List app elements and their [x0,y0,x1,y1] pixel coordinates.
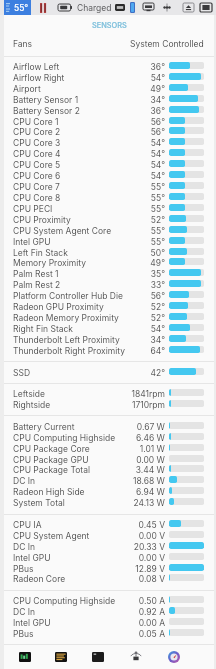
staticText: 55° [14,3,29,13]
staticText: 36° [121,106,165,116]
button[interactable]: Battery Sensor 1 [4,94,214,105]
button[interactable]: CPU Core 2 [4,126,214,137]
button[interactable]: CPU System Agent [4,530,214,541]
button[interactable]: DC In [4,541,214,552]
button[interactable]: Battery [58,4,72,11]
button[interactable]: Right Fin Stack [4,323,214,334]
staticText: 55° [121,226,165,236]
staticText: 34° [121,95,165,105]
staticText: PBus [13,629,34,639]
button[interactable]: Airflow Left [4,61,214,72]
button[interactable]: CPU Package GPU [4,454,214,465]
staticText: CPU Core 1 [13,117,59,127]
button[interactable]: Rightside [4,399,214,410]
button[interactable]: Eject [183,3,194,12]
staticText: Radeon Memory Proximity [13,313,119,323]
button[interactable]: DC In [4,475,214,486]
staticText: 42° [121,368,165,378]
staticText: 54° [121,160,165,170]
button[interactable]: Thunderbolt Right Proximity [4,345,214,356]
button[interactable]: Radeon GPU Proximity [4,301,214,312]
staticText: 0.67 W [121,422,165,432]
button[interactable]: PBus [4,563,214,574]
button[interactable]: Resize [163,3,171,12]
button[interactable]: CPU Core 7 [4,181,214,192]
button[interactable]: Radeon Core [4,573,214,584]
staticText: Intel GPU [13,553,51,563]
button[interactable]: Bluetooth [130,2,135,13]
button[interactable]: SSD [4,367,214,378]
button[interactable]: DC In [4,606,214,617]
button[interactable]: Fans [4,38,214,49]
button[interactable]: Thunderbolt Left Proximity [4,334,214,345]
button[interactable]: CPU Core 6 [4,170,214,181]
button[interactable]: System Total [4,497,214,508]
staticText: DC In [13,542,36,552]
staticText: 0.00 W [121,455,165,465]
button[interactable]: Intel GPU [4,236,214,247]
button[interactable]: Left Fin Stack [4,247,214,258]
button[interactable]: CPU System Agent Core [4,225,214,236]
button[interactable]: Radeon High Side [4,486,214,497]
staticText: CPU System Agent Core [13,226,112,236]
staticText: 3.44 W [121,465,165,475]
staticText: 1710rpm [121,400,165,410]
button[interactable]: CPU Proximity [4,214,214,225]
button[interactable]: CPU IA [4,519,214,530]
button[interactable]: CPU Core 5 [4,159,214,170]
button[interactable]: Intel GPU [4,552,214,563]
button[interactable]: Radeon Memory Proximity [4,312,214,323]
staticText: 56° [121,117,165,127]
button[interactable]: CPU Core 8 [4,192,214,203]
button[interactable]: Memory Proximity [4,257,214,268]
button[interactable]: Airflow Right [4,72,214,83]
button[interactable]: Temperature 55 degrees [4,0,31,15]
staticText: 54° [121,324,165,334]
button[interactable]: Palm Rest 2 [4,279,214,290]
staticText: 52° [121,302,165,312]
button[interactable]: Activity Monitor [19,652,31,662]
staticText: 18.68 W [121,476,165,486]
button[interactable]: CPU Core 3 [4,137,214,148]
button[interactable]: Screen [200,3,212,12]
button[interactable]: Battery Current [4,421,214,432]
button[interactable]: CPU Core 1 [4,116,214,127]
button[interactable]: Terminal [92,652,104,662]
staticText: Rightside [13,400,51,410]
staticText: CPU Core 8 [13,193,61,203]
staticText: 0.00 V [121,553,165,563]
staticText: Charged [77,3,112,13]
button[interactable]: Intel GPU [4,617,214,628]
button[interactable]: Monitor [143,3,154,12]
staticText: 35° [121,269,165,279]
button[interactable]: Airport [4,83,214,94]
button[interactable]: PBus [4,628,214,639]
button[interactable]: CPU PECI [4,203,214,214]
button[interactable]: CPU Package Total [4,464,214,475]
staticText: 36° [121,62,165,72]
button[interactable]: CPU load [40,3,47,13]
staticText: CPU Package Total [13,465,90,475]
button[interactable]: Console [55,652,67,662]
staticText: Left Fin Stack [13,248,68,258]
button[interactable]: Hardware Monitor [129,651,143,663]
staticText: CPU Proximity [13,215,71,225]
button[interactable]: CPU Computing Highside [4,595,214,606]
staticText: Fans [13,39,33,49]
staticText: 54° [121,138,165,148]
staticText: CPU Computing Highside [13,596,116,606]
button[interactable]: CPU Package Core [4,443,214,454]
staticText: 55° [121,237,165,247]
button[interactable]: Display [115,4,125,11]
staticText: CPU Core 5 [13,160,61,170]
button[interactable]: CPU Core 4 [4,148,214,159]
button[interactable]: Leftside [4,388,214,399]
staticText: 33° [121,280,165,290]
button[interactable]: Platform Controller Hub Die [4,290,214,301]
staticText: 1841rpm [121,389,165,399]
button[interactable]: CPU Computing Highside [4,432,214,443]
staticText: DC In [13,476,36,486]
button[interactable]: Battery Sensor 2 [4,105,214,116]
button[interactable]: Palm Rest 1 [4,268,214,279]
button[interactable]: Network [168,651,180,663]
